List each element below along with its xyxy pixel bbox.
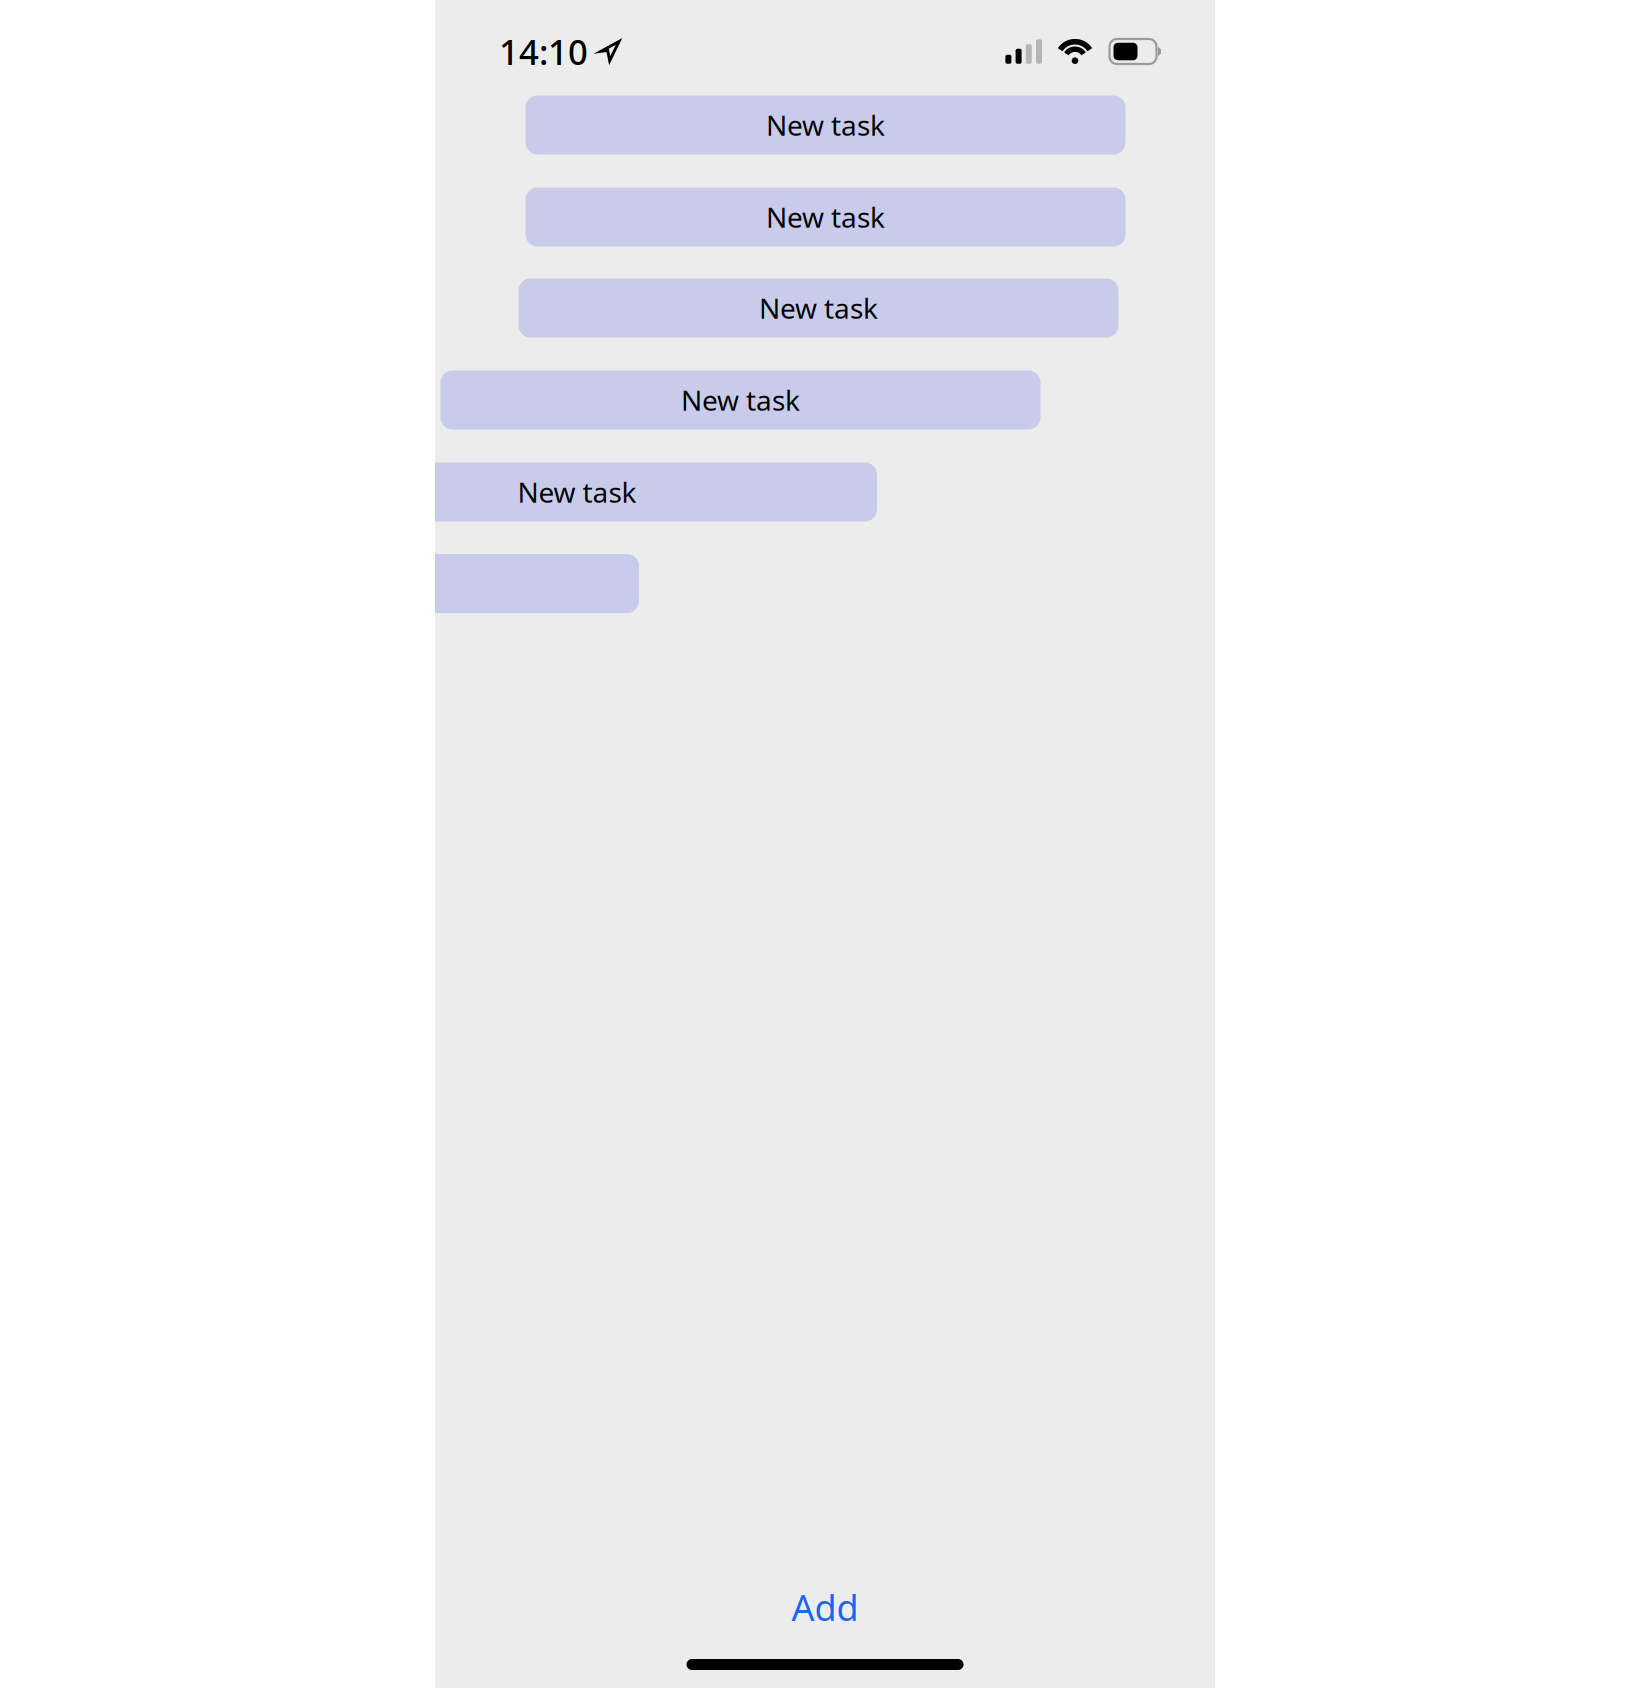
staticText: Add bbox=[791, 1583, 858, 1631]
staticText: 14:10 bbox=[499, 28, 588, 74]
button[interactable]: New task bbox=[440, 370, 1040, 429]
button[interactable]: New task bbox=[525, 187, 1125, 246]
staticText: New task bbox=[766, 198, 885, 236]
button[interactable]: Add bbox=[435, 1583, 1215, 1631]
staticText: New task bbox=[766, 106, 885, 144]
button[interactable]: New task bbox=[518, 278, 1118, 337]
button[interactable]: New task bbox=[277, 462, 877, 521]
staticText: New task bbox=[681, 381, 800, 419]
staticText: New task bbox=[517, 473, 636, 511]
button[interactable]: New task bbox=[39, 554, 639, 613]
staticText: New task bbox=[759, 289, 878, 327]
button[interactable]: New task bbox=[525, 95, 1125, 154]
